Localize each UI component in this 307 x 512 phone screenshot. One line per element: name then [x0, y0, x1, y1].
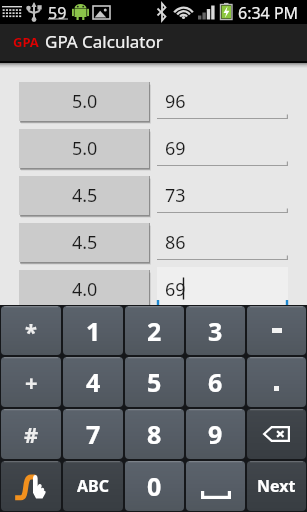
button[interactable]: 4 [63, 357, 123, 407]
staticText: # [24, 419, 39, 449]
button[interactable] [247, 357, 306, 407]
button[interactable]: 4.0 [19, 270, 149, 309]
button[interactable]: 4.5 [19, 223, 149, 262]
button[interactable]: # [1, 409, 61, 459]
button[interactable]: 8 [125, 409, 184, 459]
staticText: 69 [165, 277, 186, 302]
staticText: 6 [208, 365, 223, 399]
staticText: 96 [165, 89, 186, 114]
staticText: 4 [86, 365, 101, 399]
staticText: 4.5 [72, 230, 98, 255]
staticText: + [25, 367, 38, 397]
button[interactable]: Space [186, 461, 245, 511]
button[interactable]: GPA [0, 24, 307, 63]
button[interactable]: Next [247, 461, 306, 511]
button[interactable]: 9 [186, 409, 245, 459]
staticText: ABC [77, 475, 109, 497]
button[interactable]: 86 [157, 223, 288, 262]
staticText: Next [257, 475, 296, 497]
staticText: 5 [147, 365, 162, 399]
button[interactable]: + [1, 357, 61, 407]
staticText: 59 [48, 2, 67, 24]
button[interactable]: ABC [63, 461, 123, 511]
staticText: 8 [147, 417, 162, 451]
staticText: 1 [86, 314, 101, 348]
button[interactable]: 1 [63, 306, 123, 355]
staticText: 5.0 [72, 136, 98, 161]
staticText: * [25, 316, 37, 346]
button[interactable] [247, 306, 306, 355]
button[interactable]: 7 [63, 409, 123, 459]
button[interactable]: 6 [186, 357, 245, 407]
button[interactable]: 69 [157, 129, 288, 168]
staticText: GPA [13, 33, 39, 51]
button[interactable]: 5.0 [19, 82, 149, 121]
button[interactable]: 5.0 [19, 129, 149, 168]
button[interactable]: 69 [157, 270, 288, 309]
button[interactable]: 5 [125, 357, 184, 407]
button[interactable]: Swype [1, 461, 61, 511]
button[interactable]: * [1, 306, 61, 355]
staticText: 4.5 [72, 183, 98, 208]
button[interactable]: Backspace [247, 409, 306, 459]
button[interactable]: 96 [157, 82, 288, 121]
button[interactable]: 73 [157, 176, 288, 215]
button[interactable]: 2 [125, 306, 184, 355]
button[interactable]: 3 [186, 306, 245, 355]
staticText: 86 [165, 230, 186, 255]
staticText: 73 [165, 183, 186, 208]
button[interactable]: 4.5 [19, 176, 149, 215]
staticText: 6:34 PM [238, 2, 299, 24]
staticText: 69 [165, 136, 186, 161]
staticText: 5.0 [72, 89, 98, 114]
staticText: 2 [147, 314, 162, 348]
staticText: 0 [147, 469, 162, 503]
button[interactable]: 0 [125, 461, 184, 511]
staticText: 9 [208, 417, 223, 451]
staticText: 7 [86, 417, 101, 451]
staticText: 4.0 [72, 277, 98, 302]
staticText: GPA Calculator [45, 30, 163, 53]
staticText: 3 [208, 314, 223, 348]
